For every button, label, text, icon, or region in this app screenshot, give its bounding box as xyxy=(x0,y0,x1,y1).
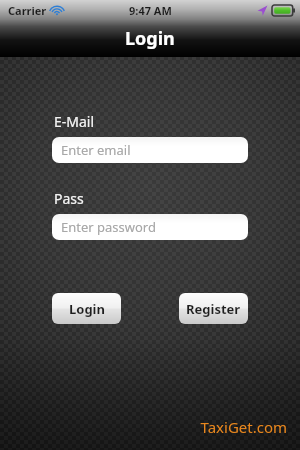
other: Wi-Fi signal xyxy=(50,4,64,16)
button[interactable]: Enter password xyxy=(52,214,248,240)
staticText: Login xyxy=(69,300,105,318)
button[interactable]: Login xyxy=(52,293,121,324)
staticText: E-Mail xyxy=(54,112,300,131)
button[interactable]: Register xyxy=(179,293,248,324)
staticText: 9:47 AM xyxy=(129,3,172,18)
staticText: Pass xyxy=(54,189,300,208)
staticText: Enter email xyxy=(61,141,131,159)
staticText: TaxiGet.com xyxy=(0,417,287,437)
staticText: Carrier xyxy=(8,3,47,18)
other: Location services active xyxy=(257,5,268,16)
staticText: Register xyxy=(186,300,241,318)
button[interactable]: Enter email xyxy=(52,137,248,163)
staticText: Login xyxy=(125,26,175,51)
staticText: Enter password xyxy=(61,218,156,236)
other: Battery full xyxy=(272,5,295,16)
